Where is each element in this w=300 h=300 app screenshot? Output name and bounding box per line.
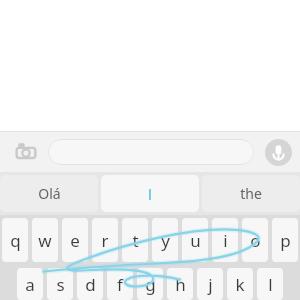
button[interactable]: i: [212, 218, 238, 262]
button[interactable]: w: [32, 218, 58, 262]
button[interactable]: d: [77, 268, 103, 300]
staticText: p: [280, 229, 291, 252]
staticText: y: [161, 229, 170, 252]
staticText: w: [38, 229, 52, 252]
staticText: r: [101, 229, 109, 252]
button[interactable]: the: [202, 175, 300, 212]
staticText: o: [250, 229, 261, 252]
button[interactable]: p: [272, 218, 298, 262]
staticText: k: [235, 273, 245, 296]
staticText: h: [175, 273, 186, 296]
button[interactable]: u: [182, 218, 208, 262]
staticText: s: [56, 273, 65, 296]
button[interactable]: Message input: [48, 139, 254, 165]
button[interactable]: g: [137, 268, 163, 300]
staticText: q: [10, 229, 21, 252]
button[interactable]: Camera: [10, 136, 42, 168]
button[interactable]: Olá: [0, 175, 98, 212]
staticText: the: [240, 184, 262, 203]
button[interactable]: f: [107, 268, 133, 300]
button[interactable]: s: [47, 268, 73, 300]
staticText: i: [223, 229, 228, 252]
button[interactable]: t: [122, 218, 148, 262]
staticText: d: [85, 273, 96, 296]
staticText: e: [70, 229, 80, 252]
staticText: u: [190, 229, 201, 252]
button[interactable]: a: [17, 268, 43, 300]
button[interactable]: o: [242, 218, 268, 262]
button[interactable]: h: [167, 268, 193, 300]
button[interactable]: k: [227, 268, 253, 300]
staticText: g: [145, 273, 156, 296]
staticText: l: [268, 273, 273, 296]
button[interactable]: q: [2, 218, 28, 262]
staticText: t: [132, 229, 139, 252]
button[interactable]: l: [101, 175, 199, 212]
button[interactable]: Voice input: [262, 136, 294, 168]
button[interactable]: r: [92, 218, 118, 262]
button[interactable]: j: [197, 268, 223, 300]
button[interactable]: y: [152, 218, 178, 262]
staticText: j: [208, 273, 213, 296]
button[interactable]: e: [62, 218, 88, 262]
staticText: l: [148, 184, 152, 204]
staticText: Olá: [38, 184, 61, 203]
staticText: f: [117, 273, 123, 296]
staticText: a: [25, 273, 35, 296]
button[interactable]: l: [257, 268, 283, 300]
